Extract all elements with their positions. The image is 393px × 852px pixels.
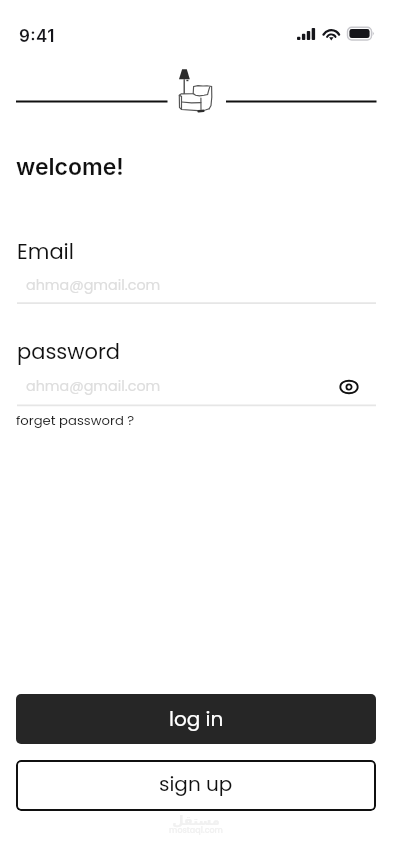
button[interactable]: log in bbox=[16, 694, 376, 744]
staticText: ahma@gmail.com bbox=[26, 376, 161, 396]
staticText: 9:41 bbox=[19, 26, 55, 47]
button[interactable]: Show password bbox=[334, 372, 363, 401]
staticText: welcome! bbox=[16, 153, 124, 181]
button[interactable]: forget password ? bbox=[16, 411, 135, 429]
staticText: password bbox=[17, 337, 121, 366]
staticText: مستقل bbox=[172, 813, 220, 828]
staticText: mostaql.com bbox=[169, 825, 223, 836]
staticText: sign up bbox=[159, 770, 233, 798]
staticText: Email bbox=[17, 237, 74, 266]
staticText: log in bbox=[169, 705, 224, 733]
button[interactable]: sign up bbox=[16, 760, 376, 811]
staticText: ahma@gmail.com bbox=[26, 275, 161, 295]
